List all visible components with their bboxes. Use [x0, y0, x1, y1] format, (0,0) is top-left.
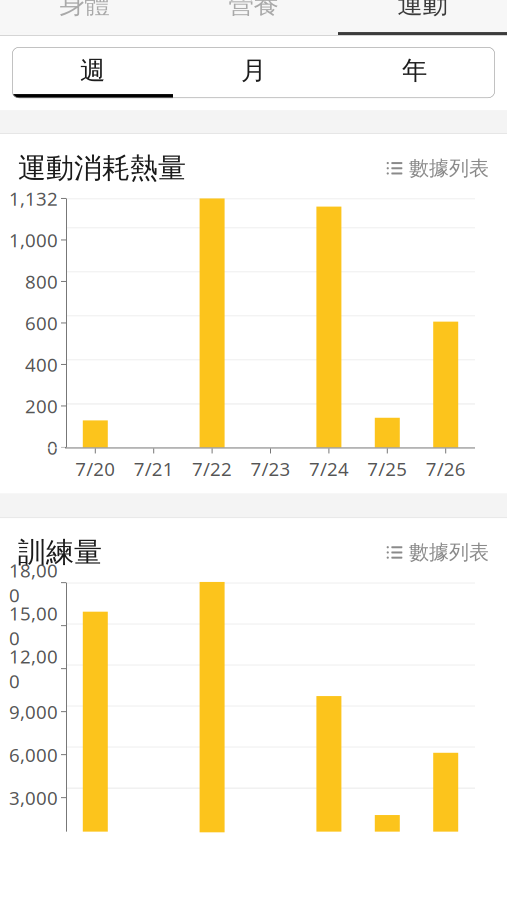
staticText: 3,000: [9, 785, 58, 810]
button[interactable]: 數據列表: [386, 536, 489, 569]
staticText: 0: [47, 435, 58, 460]
staticText: 數據列表: [409, 540, 489, 565]
button[interactable]: 年: [334, 47, 495, 94]
staticText: 訓練量: [18, 535, 102, 570]
staticText: 9,000: [9, 699, 58, 724]
staticText: 週: [80, 55, 105, 86]
staticText: 營養: [228, 0, 278, 20]
staticText: 18,000: [9, 558, 58, 607]
staticText: 7/22: [192, 456, 232, 481]
staticText: 1,000: [9, 228, 58, 252]
staticText: 7/25: [367, 456, 407, 481]
staticText: 6,000: [9, 742, 58, 767]
staticText: 7/24: [309, 456, 349, 481]
staticText: 7/20: [75, 456, 115, 481]
staticText: 年: [402, 55, 427, 86]
staticText: 7/23: [250, 456, 290, 481]
staticText: 600: [25, 311, 58, 335]
button[interactable]: 身體: [0, 0, 169, 32]
staticText: 月: [241, 55, 266, 86]
staticText: 7/26: [426, 456, 466, 481]
staticText: 運動: [397, 0, 447, 20]
staticText: 運動消耗熱量: [18, 151, 186, 185]
staticText: 400: [25, 352, 58, 377]
button[interactable]: 月: [173, 47, 334, 94]
staticText: 12,000: [9, 644, 58, 693]
staticText: 1,132: [9, 186, 58, 211]
staticText: 15,000: [9, 601, 58, 650]
staticText: 身體: [59, 0, 109, 20]
staticText: 800: [25, 269, 58, 294]
button[interactable]: 營養: [169, 0, 338, 32]
button[interactable]: 週: [12, 47, 173, 94]
staticText: 7/21: [134, 456, 174, 481]
button[interactable]: 運動: [338, 0, 507, 32]
staticText: 數據列表: [409, 156, 489, 181]
button[interactable]: 數據列表: [386, 152, 489, 185]
staticText: 200: [25, 394, 58, 418]
